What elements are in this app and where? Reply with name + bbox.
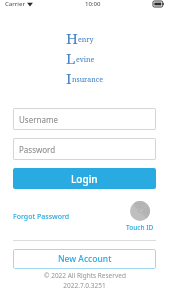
staticText: © 2022 All Rights Reserved (44, 271, 126, 280)
staticText: Forgot Password (13, 212, 70, 222)
staticText: nsurance (72, 75, 103, 85)
staticText: H (66, 28, 78, 48)
staticText: enry (78, 35, 94, 45)
staticText: New Account (58, 253, 112, 265)
staticText: L (66, 48, 76, 68)
staticText: Login (71, 172, 98, 186)
staticText: 2022.7.0.3251 (63, 281, 106, 290)
staticText: Password (19, 144, 56, 155)
button[interactable]: Username (13, 108, 156, 130)
button[interactable]: Forgot Password (13, 209, 70, 225)
staticText: evine (76, 55, 95, 65)
staticText: 10:00 (85, 0, 101, 8)
button[interactable]: New Account (13, 249, 156, 269)
button[interactable]: Password (13, 138, 156, 160)
staticText: Username (19, 114, 58, 125)
staticText: Carrier (5, 0, 25, 8)
button[interactable]: Login (13, 168, 156, 189)
staticText: I (66, 68, 72, 88)
button[interactable]: Touch ID (124, 199, 156, 234)
staticText: Touch ID (126, 223, 154, 232)
